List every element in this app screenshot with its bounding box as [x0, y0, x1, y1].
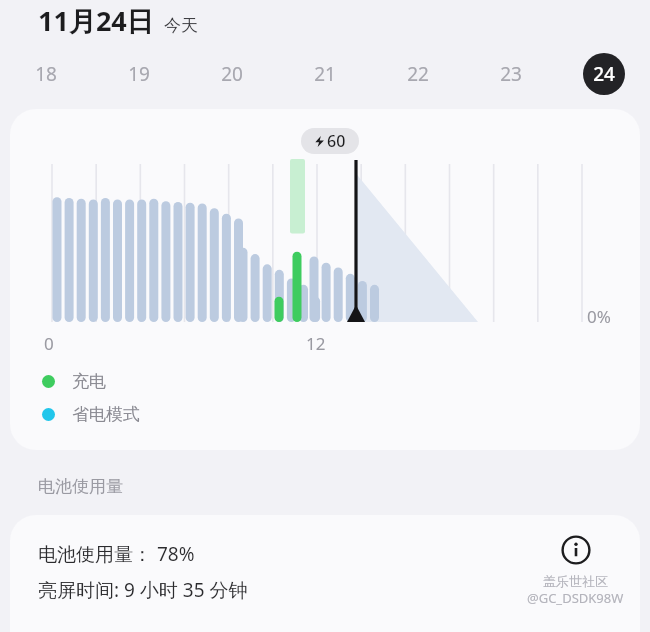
staticText: 亮屏时间: 9 小时 35 分钟: [38, 577, 248, 603]
staticText: 12: [306, 332, 326, 355]
button[interactable]: 23: [464, 61, 557, 87]
staticText: 22: [407, 61, 429, 87]
staticText: 盖乐世社区: [543, 573, 608, 589]
button[interactable]: 电池使用量： 78%: [10, 515, 640, 632]
staticText: 23: [500, 61, 522, 87]
button[interactable]: 24: [557, 53, 650, 95]
staticText: 18: [35, 61, 57, 87]
button[interactable]: 信息: [559, 533, 593, 567]
button[interactable]: 省电模式: [42, 404, 140, 425]
button[interactable]: 21: [278, 61, 371, 87]
staticText: 24: [593, 61, 615, 87]
button[interactable]: 19: [92, 61, 185, 87]
staticText: 电池使用量: [38, 476, 123, 497]
staticText: 11月24日: [38, 2, 154, 39]
staticText: 20: [221, 61, 243, 87]
staticText: 21: [314, 61, 336, 87]
button[interactable]: 18: [0, 61, 92, 87]
staticText: 充电: [72, 371, 106, 392]
button[interactable]: 60: [301, 128, 359, 154]
staticText: 60: [327, 130, 346, 152]
staticText: 0%: [587, 305, 611, 328]
staticText: @GC_DSDK98W: [527, 589, 624, 607]
staticText: 19: [128, 61, 150, 87]
staticText: 0: [44, 332, 54, 355]
button[interactable]: 60: [10, 109, 640, 450]
button[interactable]: 20: [185, 61, 278, 87]
staticText: 今天: [164, 15, 198, 36]
staticText: 电池使用量： 78%: [38, 541, 195, 567]
staticText: 省电模式: [72, 404, 140, 425]
button[interactable]: 充电: [42, 371, 106, 392]
button[interactable]: 22: [371, 61, 464, 87]
